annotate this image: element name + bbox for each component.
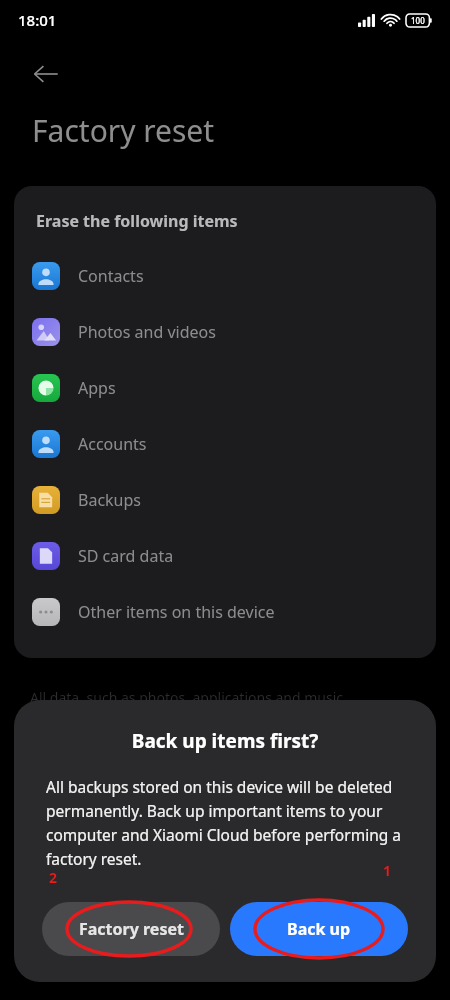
staticText: All backups stored on this device will b…: [46, 776, 404, 869]
staticText: Backups: [78, 489, 141, 511]
button[interactable]: Factory reset: [42, 902, 220, 956]
button[interactable]: Contacts: [14, 248, 436, 304]
button[interactable]: Other items on this device: [14, 584, 436, 640]
staticText: SD card data: [78, 545, 174, 567]
staticText: Photos and videos: [78, 321, 216, 343]
staticText: Accounts: [78, 433, 147, 455]
staticText: Erase the following items: [36, 210, 238, 232]
button[interactable]: Photos and videos: [14, 304, 436, 360]
staticText: Contacts: [78, 265, 144, 287]
button[interactable]: Back: [22, 50, 70, 98]
staticText: All data, such as photos, applications a…: [30, 688, 347, 707]
staticText: 2: [49, 868, 58, 887]
staticText: 1: [383, 861, 392, 880]
staticText: Back up items first?: [14, 728, 436, 754]
button[interactable]: Back up: [230, 902, 408, 956]
button[interactable]: SD card data: [14, 528, 436, 584]
staticText: Apps: [78, 377, 116, 399]
staticText: Other items on this device: [78, 601, 275, 623]
staticText: Factory reset: [79, 918, 184, 940]
staticText: Back up: [287, 918, 351, 940]
button[interactable]: Apps: [14, 360, 436, 416]
button[interactable]: Backups: [14, 472, 436, 528]
staticText: Factory reset: [32, 110, 215, 151]
staticText: 100: [411, 15, 425, 26]
staticText: 18:01: [18, 10, 57, 30]
button[interactable]: Accounts: [14, 416, 436, 472]
